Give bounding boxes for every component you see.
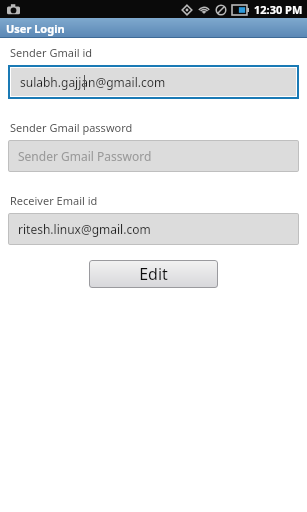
staticText: Sender Gmail password <box>10 120 133 135</box>
staticText: ritesh.linux@gmail.com <box>18 221 151 237</box>
staticText: Sender Gmail Password <box>18 148 152 164</box>
button[interactable]: ritesh.linux@gmail.com <box>8 213 299 245</box>
button[interactable]: Sender Gmail Password <box>8 140 299 172</box>
button[interactable]: sulabh.gajjan@gmail.com <box>11 68 296 96</box>
button[interactable]: Edit <box>89 260 218 288</box>
staticText: sulabh.gajjan@gmail.com <box>20 74 166 90</box>
staticText: Edit <box>139 263 168 285</box>
staticText: User Login <box>6 21 65 36</box>
staticText: 12:30 PM <box>254 2 303 17</box>
staticText: Sender Gmail id <box>10 45 93 60</box>
staticText: Receiver Email id <box>10 193 98 208</box>
